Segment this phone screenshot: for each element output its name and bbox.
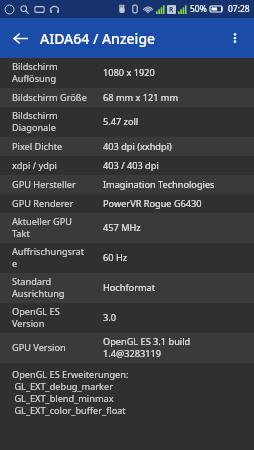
button[interactable]: More options — [219, 22, 251, 54]
staticText: 07:28 — [228, 3, 250, 15]
staticText: 68 mm x 121 mm — [103, 92, 179, 104]
staticText: OpenGL ES Erweiterungen: — [12, 369, 129, 381]
staticText: 5.47 zoll — [103, 116, 139, 128]
staticText: 403 / 403 dpi — [103, 160, 159, 172]
staticText: 60 Hz — [103, 252, 128, 264]
button[interactable]: Pixel Dichte — [0, 137, 254, 156]
staticText: Hochformat — [103, 282, 156, 294]
staticText: 50% — [190, 3, 207, 15]
button[interactable]: Auffrischungsrat e — [0, 243, 254, 273]
staticText: 1080 x 1920 — [103, 67, 155, 79]
staticText: R — [169, 5, 174, 14]
staticText: GPU Version — [12, 342, 66, 354]
staticText: 457 MHz — [103, 222, 141, 234]
button[interactable]: Bildschirm Größe — [0, 88, 254, 107]
button[interactable]: Standard Ausrichtung — [0, 273, 254, 303]
button[interactable]: OpenGL ES Erweiterungen: — [0, 363, 254, 423]
staticText: Aktueller GPU Takt — [12, 216, 73, 240]
staticText: Bildschirm Diagonale — [12, 110, 58, 134]
staticText: GL_EXT_blend_minmax — [12, 393, 114, 405]
button[interactable]: OpenGL ES Version — [0, 303, 254, 333]
button[interactable]: GPU Version — [0, 333, 254, 363]
button[interactable]: Aktueller GPU Takt — [0, 213, 254, 243]
staticText: Bildschirm Größe — [12, 92, 87, 104]
staticText: PowerVR Rogue G6430 — [103, 198, 202, 210]
staticText: GPU Renderer — [12, 198, 74, 210]
button[interactable]: Bildschirm Diagonale — [0, 107, 254, 137]
staticText: xdpi / ydpi — [12, 160, 57, 172]
staticText: Bildschirm Auflösung — [12, 61, 58, 85]
button[interactable]: xdpi / ydpi — [0, 156, 254, 175]
staticText: Auffrischungsrat e — [12, 246, 85, 270]
staticText: Standard Ausrichtung — [12, 276, 65, 300]
staticText: OpenGL ES Version — [12, 306, 60, 330]
staticText: Imagination Technologies — [103, 179, 215, 191]
button[interactable]: GPU Renderer — [0, 194, 254, 213]
button[interactable]: Back — [4, 22, 36, 54]
staticText: Pixel Dichte — [12, 141, 63, 153]
staticText: AIDA64 / Anzeige — [40, 29, 156, 48]
staticText: GL_EXT_debug_marker — [12, 381, 113, 393]
staticText: 403 dpi (xxhdpi) — [103, 141, 172, 153]
staticText: GPU Hersteller — [12, 179, 76, 191]
staticText: OpenGL ES 3.1 build 1.4@3283119 — [103, 336, 191, 360]
button[interactable]: GPU Hersteller — [0, 175, 254, 194]
button[interactable]: Bildschirm Auflösung — [0, 58, 254, 88]
staticText: 3.0 — [103, 312, 116, 324]
staticText: GL_EXT_color_buffer_float — [12, 405, 126, 417]
